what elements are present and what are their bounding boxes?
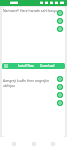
staticText: Namaste!! Hare haradn sahi basyo [3,8,58,13]
button[interactable]: Home [29,139,39,149]
button[interactable]: Action 2 [57,92,63,98]
button[interactable]: Recents [48,139,58,149]
button[interactable]: Action 2 [57,26,63,32]
staticText: Install Now [18,64,34,68]
button[interactable]: Install Now [2,63,65,69]
staticText: Download [40,64,55,68]
button[interactable]: Action 3 [57,100,63,106]
staticText: ubhijau [3,83,16,88]
button[interactable]: Action 0 [57,76,63,82]
button[interactable]: Action 1 [57,18,63,24]
button[interactable]: Action 1 [57,84,63,90]
button[interactable]: Back [9,139,19,149]
staticText: Aangreji kudhi thee angrejko [3,78,50,83]
button[interactable]: Action 0 [57,10,63,16]
